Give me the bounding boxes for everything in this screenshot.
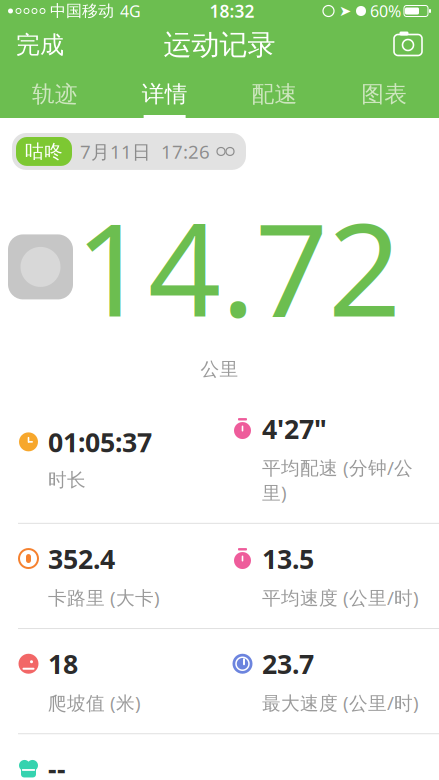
staticText: 轨迹 [32,80,78,108]
staticText: 平均配速 (分钟/公里) [262,455,413,505]
staticText: 4'27" [262,411,327,446]
staticText: 爬坡值 (米) [48,690,141,715]
staticText: 13.5 [262,541,314,576]
staticText: 详情 [142,80,188,108]
staticText: 配速 [251,80,297,108]
staticText: 4G [120,0,141,22]
staticText: 平均速度 (公里/时) [262,585,419,610]
staticText: 图表 [361,80,407,108]
staticText: 完成 [16,30,64,60]
staticText: 14.72 [75,182,401,352]
staticText: 7月11日 17:26 [80,139,210,164]
staticText: 最大速度 (公里/时) [262,690,419,715]
button[interactable]: 图表 [329,68,439,118]
button[interactable]: 相机 [377,25,439,65]
staticText: ➤ [339,3,351,19]
staticText: 咕咚 [25,140,63,163]
staticText: 卡路里 (大卡) [48,585,160,610]
staticText: -- [48,751,66,780]
button[interactable]: 完成 [0,22,80,68]
staticText: 18:32 [209,0,254,22]
staticText: 01:05:37 [48,424,152,460]
button[interactable]: 轨迹 [0,68,110,118]
staticText: 运动记录 [163,28,275,62]
staticText: 中国移动 [50,1,114,21]
button[interactable]: 详情 [110,68,220,118]
button[interactable]: 配速 [219,68,329,118]
staticText: 23.7 [262,646,314,681]
staticText: 352.4 [48,541,115,576]
staticText: 60% [370,0,401,22]
staticText: 时长 [48,469,86,491]
staticText: 18 [48,646,78,681]
staticText: 公里 [200,358,238,381]
